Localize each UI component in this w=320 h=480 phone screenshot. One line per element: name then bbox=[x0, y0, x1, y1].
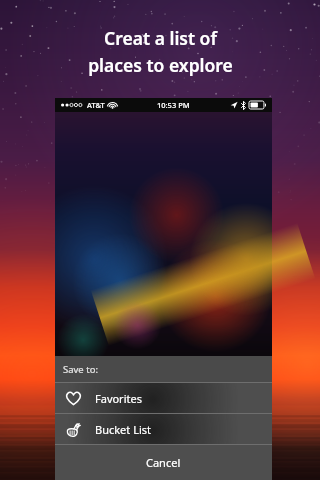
staticText: Creat a list of bbox=[104, 26, 217, 50]
staticText: AT&T bbox=[87, 100, 105, 110]
button[interactable]: Cancel bbox=[55, 445, 272, 480]
staticText: 10:53 PM bbox=[157, 100, 190, 110]
staticText: Cancel bbox=[146, 455, 181, 470]
button[interactable]: Save to Bucket List bbox=[55, 414, 272, 444]
staticText: Favorites bbox=[95, 391, 142, 406]
staticText: places to explore bbox=[88, 53, 233, 77]
button[interactable]: Save to Favorites bbox=[55, 383, 272, 413]
staticText: Bucket List bbox=[95, 422, 151, 437]
staticText: Save to: bbox=[63, 363, 98, 376]
